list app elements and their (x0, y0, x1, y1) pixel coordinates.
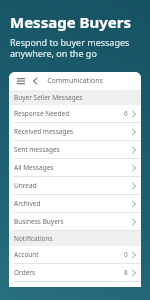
staticText: 6 (124, 109, 128, 118)
button[interactable]: Received messages (9, 123, 141, 140)
staticText: Sent messages (14, 145, 132, 154)
button[interactable]: Back (29, 75, 41, 87)
staticText: Communications (47, 76, 103, 86)
staticText: Respond to buyer messages anywhere, on t… (10, 36, 130, 60)
staticText: Business Buyers (14, 217, 132, 226)
button[interactable]: Menu (14, 74, 28, 88)
staticText: All Messages (14, 163, 132, 172)
staticText: 8 (124, 268, 128, 277)
button[interactable]: Orders (9, 264, 141, 281)
staticText: Archived (14, 199, 132, 208)
staticText: Unread (14, 181, 132, 190)
button[interactable]: Account (9, 246, 141, 263)
button[interactable]: Business Buyers (9, 213, 141, 230)
button[interactable]: Archived (9, 195, 141, 212)
staticText: Account (14, 250, 124, 259)
staticText: Orders (14, 268, 124, 277)
staticText: Response Needed (14, 109, 124, 118)
button[interactable]: Sent messages (9, 141, 141, 158)
button[interactable]: Unread (9, 177, 141, 194)
staticText: Received messages (14, 127, 132, 136)
staticText: Buyer Seller Messages (14, 93, 83, 102)
staticText: Message Buyers (10, 12, 131, 32)
staticText: 0 (124, 250, 128, 259)
button[interactable]: Response Needed (9, 105, 141, 122)
button[interactable]: All Messages (9, 159, 141, 176)
staticText: Notifications (14, 234, 53, 243)
